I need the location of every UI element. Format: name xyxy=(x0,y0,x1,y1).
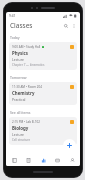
staticText: Classes xyxy=(10,21,33,30)
button[interactable]: 9:00 AM • Study Hall xyxy=(9,42,77,70)
staticText: Lecture xyxy=(12,132,24,137)
button[interactable]: Schedule xyxy=(37,154,50,166)
staticText: 9:00 AM • Study Hall xyxy=(12,45,41,49)
staticText: Chapter 7 — kinematics xyxy=(12,63,45,67)
staticText: 9:41 xyxy=(9,14,16,18)
staticText: Biology xyxy=(12,125,29,131)
staticText: See all items xyxy=(10,110,31,115)
staticText: Lecture xyxy=(12,57,24,62)
staticText: Practical xyxy=(12,97,26,102)
button[interactable]: Profile xyxy=(66,154,79,166)
button[interactable]: More options xyxy=(70,22,77,29)
staticText: Today xyxy=(10,35,20,40)
button[interactable]: 11:30 AM • Room 204 xyxy=(9,82,77,105)
staticText: 11:30 AM • Room 204 xyxy=(12,85,43,89)
staticText: Chemistry xyxy=(12,90,35,96)
button[interactable]: Add class xyxy=(63,139,76,152)
button[interactable]: Assignments xyxy=(22,154,35,166)
button[interactable]: Search xyxy=(62,22,69,29)
button[interactable]: Grades xyxy=(51,154,64,166)
staticText: Tomorrow xyxy=(10,75,27,80)
button[interactable]: 2:15 PM • Lab B-102 xyxy=(9,117,77,145)
staticText: Cell structure xyxy=(12,138,31,142)
staticText: Physics xyxy=(12,50,29,56)
button[interactable]: Classes xyxy=(8,154,21,166)
staticText: 2:15 PM • Lab B-102 xyxy=(12,120,40,124)
